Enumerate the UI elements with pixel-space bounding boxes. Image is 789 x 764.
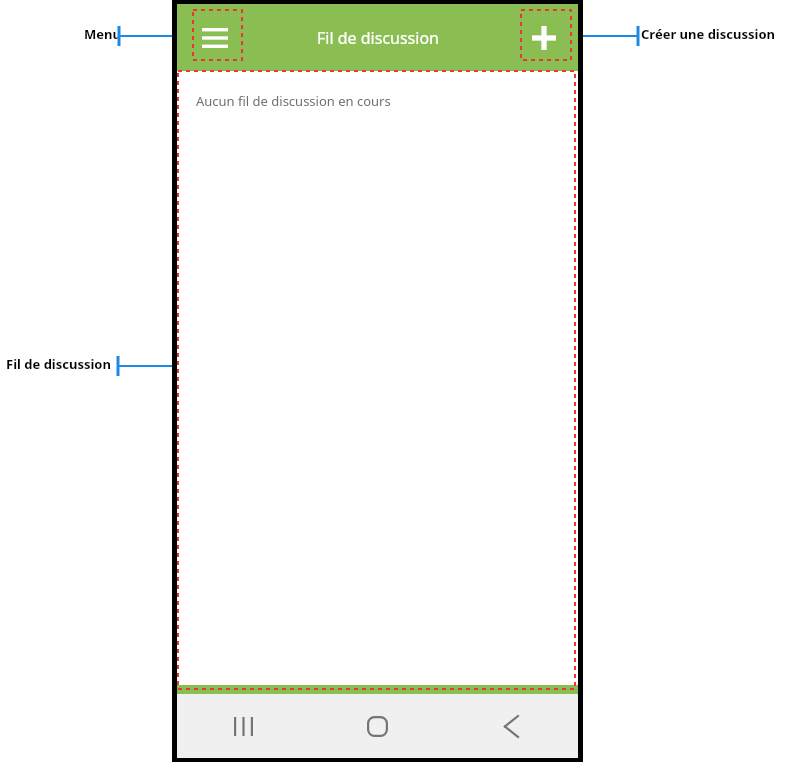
button[interactable]: Créer une discussion <box>520 14 568 62</box>
staticText: Fil de discussion <box>317 27 439 49</box>
button[interactable]: Recents <box>177 694 310 758</box>
button[interactable]: Back <box>444 694 578 758</box>
staticText: Aucun fil de discussion en cours <box>196 92 391 110</box>
button[interactable]: Home <box>310 694 444 758</box>
staticText: Fil de discussion <box>6 355 111 373</box>
staticText: Créer une discussion <box>641 25 775 43</box>
staticText: Menu <box>84 25 121 43</box>
button[interactable]: Menu <box>191 14 239 62</box>
